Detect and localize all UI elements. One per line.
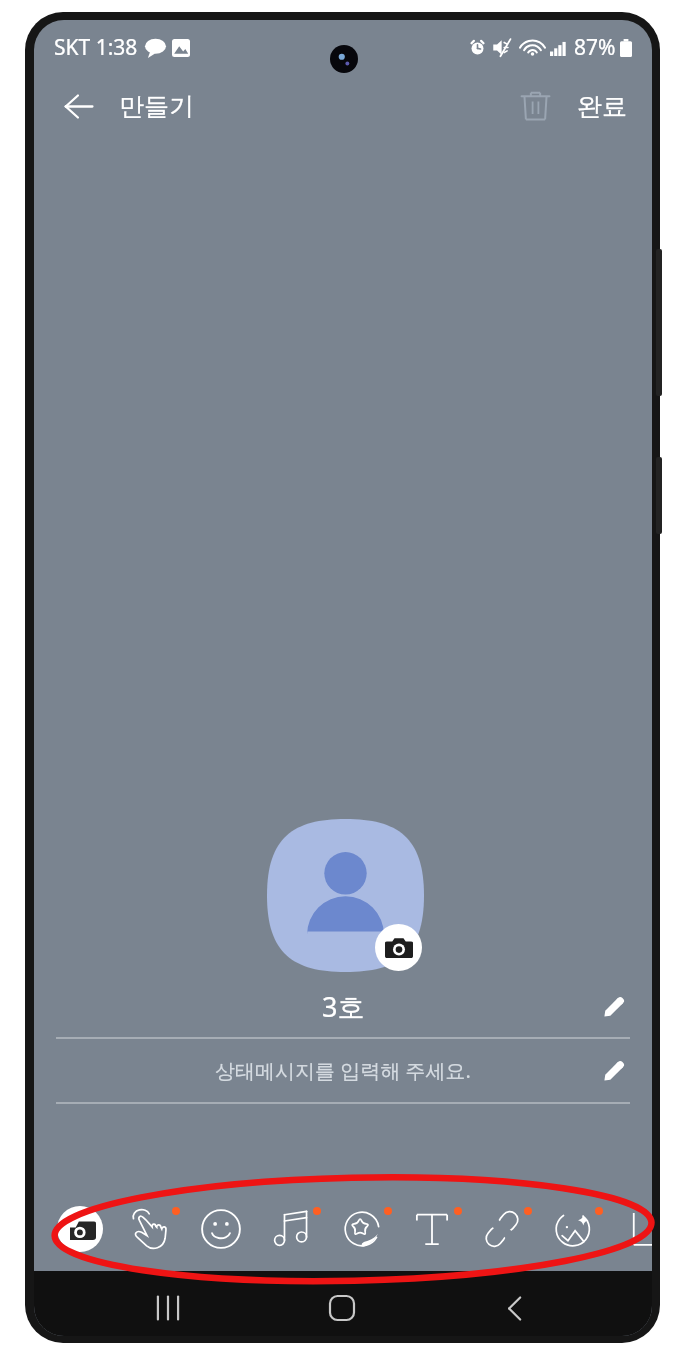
staticText: 87% bbox=[574, 33, 616, 62]
button[interactable]: Music bbox=[257, 1195, 325, 1263]
button[interactable]: Photo bbox=[539, 1195, 607, 1263]
button[interactable]: Delete bbox=[511, 82, 559, 130]
button[interactable]: Hand gesture bbox=[116, 1195, 184, 1263]
staticText: 3호 bbox=[322, 988, 365, 1025]
button[interactable]: Back bbox=[482, 1276, 546, 1336]
button[interactable]: Emoji bbox=[187, 1195, 255, 1263]
button[interactable]: Link bbox=[468, 1195, 536, 1263]
button[interactable]: Text bbox=[398, 1195, 466, 1263]
button[interactable]: Recent apps bbox=[136, 1276, 200, 1336]
other: Edit status message bbox=[598, 1054, 630, 1086]
button[interactable]: Change profile photo bbox=[375, 924, 422, 971]
other: Edit name bbox=[598, 990, 630, 1022]
staticText: SKT 1:38 bbox=[54, 33, 138, 62]
staticText: 완료 bbox=[577, 91, 627, 122]
button[interactable]: Home bbox=[310, 1276, 374, 1336]
button[interactable]: Back bbox=[50, 78, 106, 134]
staticText: 만들기 bbox=[119, 91, 194, 122]
button[interactable]: More bbox=[609, 1195, 652, 1263]
button[interactable]: 상태메시지를 입력해 주세요. bbox=[56, 1038, 630, 1102]
button[interactable]: 완료 bbox=[573, 82, 631, 130]
staticText: 상태메시지를 입력해 주세요. bbox=[215, 1057, 471, 1084]
button[interactable]: Sticker bbox=[328, 1195, 396, 1263]
button[interactable]: Camera bbox=[46, 1195, 114, 1263]
button[interactable]: 3호 bbox=[56, 979, 630, 1033]
